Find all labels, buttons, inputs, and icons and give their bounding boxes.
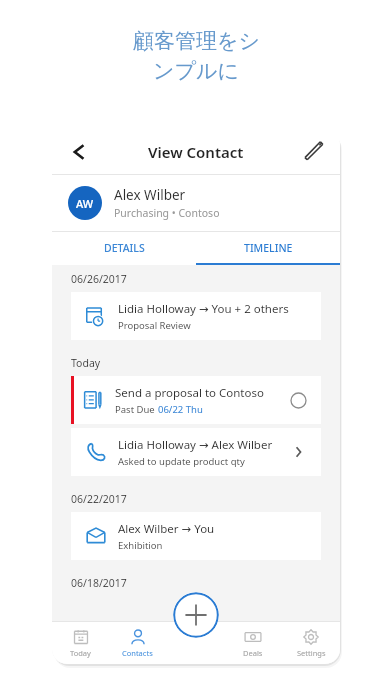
staticText: AW: [76, 196, 94, 211]
button[interactable]: Back: [60, 135, 94, 169]
staticText: ンプルに: [153, 58, 239, 84]
staticText: TIMELINE: [244, 241, 293, 255]
staticText: Send a proposal to Contoso: [115, 385, 264, 401]
button[interactable]: DETAILS: [52, 232, 196, 263]
staticText: Settings: [297, 648, 326, 658]
button[interactable]: Send a proposal to Contoso: [71, 376, 321, 424]
button[interactable]: Lidia Holloway → Alex Wilber: [71, 428, 321, 476]
staticText: Asked to update product qty: [118, 455, 245, 468]
button[interactable]: Contacts: [109, 622, 166, 664]
staticText: 06/22/2017: [71, 492, 127, 506]
button[interactable]: Lidia Holloway → You + 2 others: [71, 292, 321, 340]
staticText: Exhibition: [118, 539, 163, 552]
staticText: 顧客管理をシ: [133, 28, 260, 54]
button[interactable]: Settings: [282, 622, 340, 664]
staticText: View Contact: [148, 142, 244, 162]
staticText: 06/26/2017: [71, 272, 127, 286]
button[interactable]: Edit: [300, 137, 330, 167]
button[interactable]: Open details: [289, 443, 307, 461]
button[interactable]: Deals: [224, 622, 282, 664]
staticText: Alex Wilber → You: [118, 521, 215, 537]
button[interactable]: Alex Wilber → You: [71, 512, 321, 560]
staticText: DETAILS: [104, 241, 145, 255]
staticText: Today: [70, 648, 91, 658]
button[interactable]: Today: [52, 622, 109, 664]
staticText: 06/18/2017: [71, 576, 127, 590]
staticText: Proposal Review: [118, 319, 191, 332]
button[interactable]: TIMELINE: [196, 232, 340, 263]
staticText: Deals: [243, 648, 263, 658]
staticText: Today: [71, 356, 101, 370]
button[interactable]: AW: [52, 175, 340, 231]
button[interactable]: Add: [173, 592, 219, 638]
staticText: Contacts: [122, 648, 153, 658]
staticText: Past Due: [115, 403, 158, 416]
staticText: Lidia Holloway → You + 2 others: [118, 301, 289, 317]
staticText: Purchasing • Contoso: [114, 206, 220, 220]
staticText: Alex Wilber: [114, 186, 186, 204]
staticText: 06/22 Thu: [158, 403, 203, 416]
button[interactable]: Complete task: [290, 392, 307, 409]
staticText: Lidia Holloway → Alex Wilber: [118, 437, 273, 453]
